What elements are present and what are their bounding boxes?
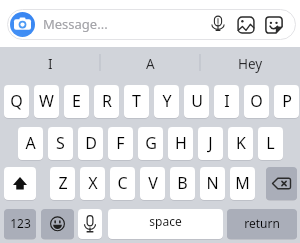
button[interactable]: return (227, 209, 297, 239)
staticText: Hey (238, 55, 263, 73)
staticText: I (224, 90, 230, 112)
staticText: M (235, 172, 250, 194)
button[interactable]: S (48, 127, 73, 160)
staticText: P (282, 90, 292, 112)
staticText: A (146, 55, 155, 73)
staticText: W (39, 90, 54, 112)
button[interactable]: V (140, 167, 165, 200)
button[interactable]: B (170, 167, 195, 200)
button[interactable]: H (168, 127, 193, 160)
staticText: 123 (10, 215, 31, 231)
button[interactable]: Y (154, 85, 179, 118)
button[interactable]: O (244, 85, 269, 118)
button[interactable]: Photos (237, 16, 255, 34)
button[interactable]: space (108, 209, 223, 239)
button[interactable]: A (18, 127, 43, 160)
staticText: G (145, 132, 157, 154)
button[interactable]: P (274, 85, 299, 118)
staticText: S (56, 132, 65, 154)
staticText: V (148, 172, 158, 194)
button[interactable]: Dictate (78, 209, 102, 239)
staticText: Y (162, 90, 172, 112)
button[interactable]: I (0, 50, 100, 78)
staticText: Message... (43, 15, 108, 33)
button[interactable]: I (214, 85, 239, 118)
button[interactable]: Z (50, 167, 75, 200)
staticText: R (102, 90, 112, 112)
button[interactable]: D (78, 127, 103, 160)
staticText: L (266, 132, 275, 154)
staticText: F (116, 132, 125, 154)
button[interactable]: Q (4, 85, 29, 118)
staticText: X (88, 172, 98, 194)
staticText: space (149, 213, 182, 229)
staticText: B (177, 172, 188, 194)
button[interactable]: Emoji (41, 209, 74, 239)
staticText: A (25, 132, 36, 154)
staticText: H (175, 132, 187, 154)
button[interactable]: W (34, 85, 59, 118)
staticText: U (191, 90, 203, 112)
button[interactable]: F (108, 127, 133, 160)
staticText: O (250, 90, 263, 112)
staticText: I (48, 55, 53, 73)
button[interactable]: G (138, 127, 163, 160)
staticText: Z (58, 172, 68, 194)
staticText: Q (10, 90, 23, 112)
button[interactable]: A (100, 50, 200, 78)
button[interactable]: Stickers (265, 16, 283, 34)
button[interactable]: M (230, 167, 255, 200)
button[interactable]: E (64, 85, 89, 118)
staticText: N (206, 172, 219, 194)
staticText: E (72, 90, 81, 112)
staticText: J (208, 132, 213, 154)
button[interactable]: R (94, 85, 119, 118)
button[interactable]: Hey (200, 50, 300, 78)
button[interactable]: Backspace (266, 167, 297, 200)
button[interactable]: U (184, 85, 209, 118)
button[interactable]: K (228, 127, 253, 160)
button[interactable]: C (110, 167, 135, 200)
button[interactable]: N (200, 167, 225, 200)
button[interactable]: Shift (4, 167, 36, 200)
button[interactable]: X (80, 167, 105, 200)
button[interactable]: Camera (10, 12, 35, 37)
button[interactable]: Voice message (209, 14, 227, 32)
staticText: T (132, 90, 141, 112)
button[interactable]: T (124, 85, 149, 118)
button[interactable] (7, 9, 296, 40)
staticText: K (236, 132, 246, 154)
staticText: C (117, 172, 128, 194)
button[interactable]: 123 (4, 209, 36, 239)
button[interactable]: L (258, 127, 283, 160)
button[interactable]: J (198, 127, 223, 160)
staticText: return (244, 215, 280, 231)
staticText: D (85, 132, 97, 154)
